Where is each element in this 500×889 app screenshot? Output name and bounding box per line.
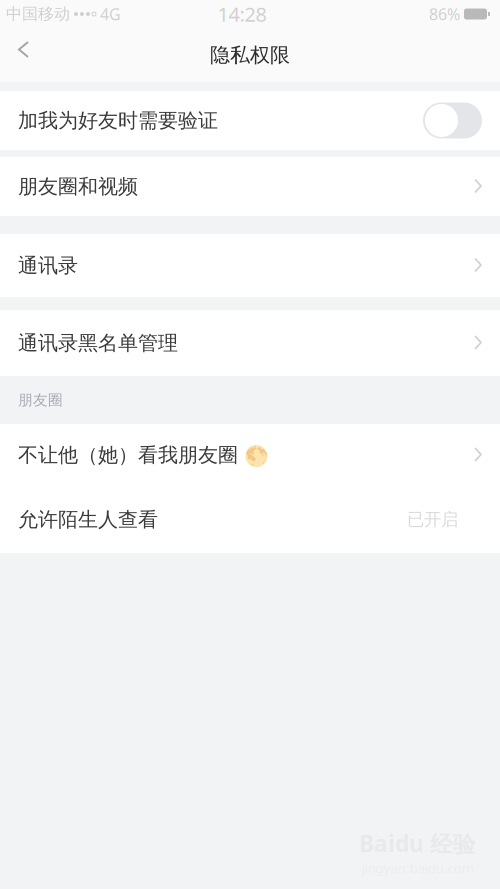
staticText: 86% [429,3,460,25]
staticText: 4G [100,3,121,25]
staticText: 中国移动 [6,4,70,24]
staticText: 已开启 [407,509,458,530]
staticText: 朋友圈 [18,391,63,409]
button[interactable]: Back [0,28,46,82]
staticText: 朋友圈和视频 [18,174,138,199]
button[interactable]: 不让他（她）看我朋友圈 🌕 [0,424,500,486]
button[interactable]: 允许陌生人查看 [0,486,500,553]
staticText: 允许陌生人查看 [18,507,158,532]
button[interactable]: 通讯录黑名单管理 [0,310,500,376]
staticText: 通讯录 [18,253,78,278]
staticText: 加我为好友时需要验证 [18,108,218,133]
staticText: Baidu 经验 [359,828,476,858]
button[interactable]: 通讯录 [0,234,500,297]
button[interactable]: 朋友圈和视频 [0,157,500,216]
staticText: 隐私权限 [210,43,290,67]
staticText: 通讯录黑名单管理 [18,331,178,355]
button[interactable]: 加我为好友时需要验证 [0,91,500,150]
staticText: 不让他（她）看我朋友圈 🌕 [18,443,269,467]
staticText: 14:28 [217,1,266,27]
